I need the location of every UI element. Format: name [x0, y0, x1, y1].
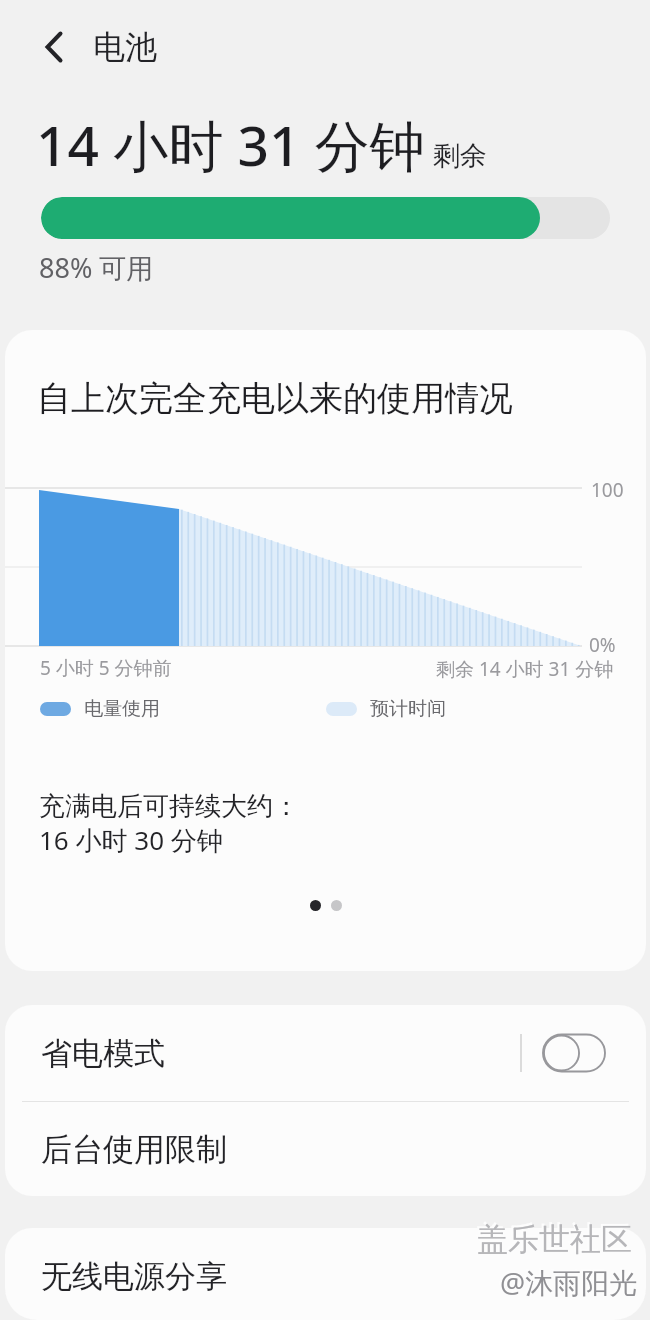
staticText: 88% 可用: [39, 249, 154, 286]
button[interactable]: 自上次完全充电以来的使用情况: [5, 330, 646, 971]
button[interactable]: Page 1: [310, 900, 321, 911]
staticText: 5 小时 5 分钟前: [40, 655, 172, 681]
staticText: 无线电源分享: [41, 1257, 227, 1296]
button[interactable]: Power saving mode toggle: [521, 1023, 605, 1083]
staticText: @沐雨阳光: [500, 1263, 638, 1301]
button[interactable]: 后台使用限制: [5, 1102, 646, 1196]
staticText: 16 小时 30 分钟: [39, 822, 223, 858]
staticText: 充满电后可持续大约：: [39, 790, 299, 823]
staticText: 14 小时 31 分钟: [36, 107, 425, 182]
staticText: 盖乐世社区: [475, 1218, 630, 1257]
staticText: 电池: [93, 27, 157, 67]
button[interactable]: Page 2: [331, 900, 342, 911]
staticText: 100: [591, 477, 624, 503]
button[interactable]: Back: [26, 19, 82, 75]
staticText: @沐雨阳光: [498, 1261, 636, 1299]
staticText: 预计时间: [370, 697, 446, 721]
button[interactable]: 省电模式: [5, 1005, 646, 1101]
button[interactable]: 无线电源分享: [5, 1228, 646, 1320]
staticText: 自上次完全充电以来的使用情况: [37, 377, 513, 420]
staticText: 剩余 14 小时 31 分钟: [436, 656, 614, 682]
staticText: 电量使用: [84, 697, 160, 721]
staticText: 省电模式: [41, 1034, 165, 1073]
staticText: 后台使用限制: [41, 1130, 227, 1169]
staticText: 0%: [589, 632, 616, 658]
staticText: 盖乐世社区: [477, 1220, 632, 1259]
staticText: 剩余: [433, 139, 487, 173]
